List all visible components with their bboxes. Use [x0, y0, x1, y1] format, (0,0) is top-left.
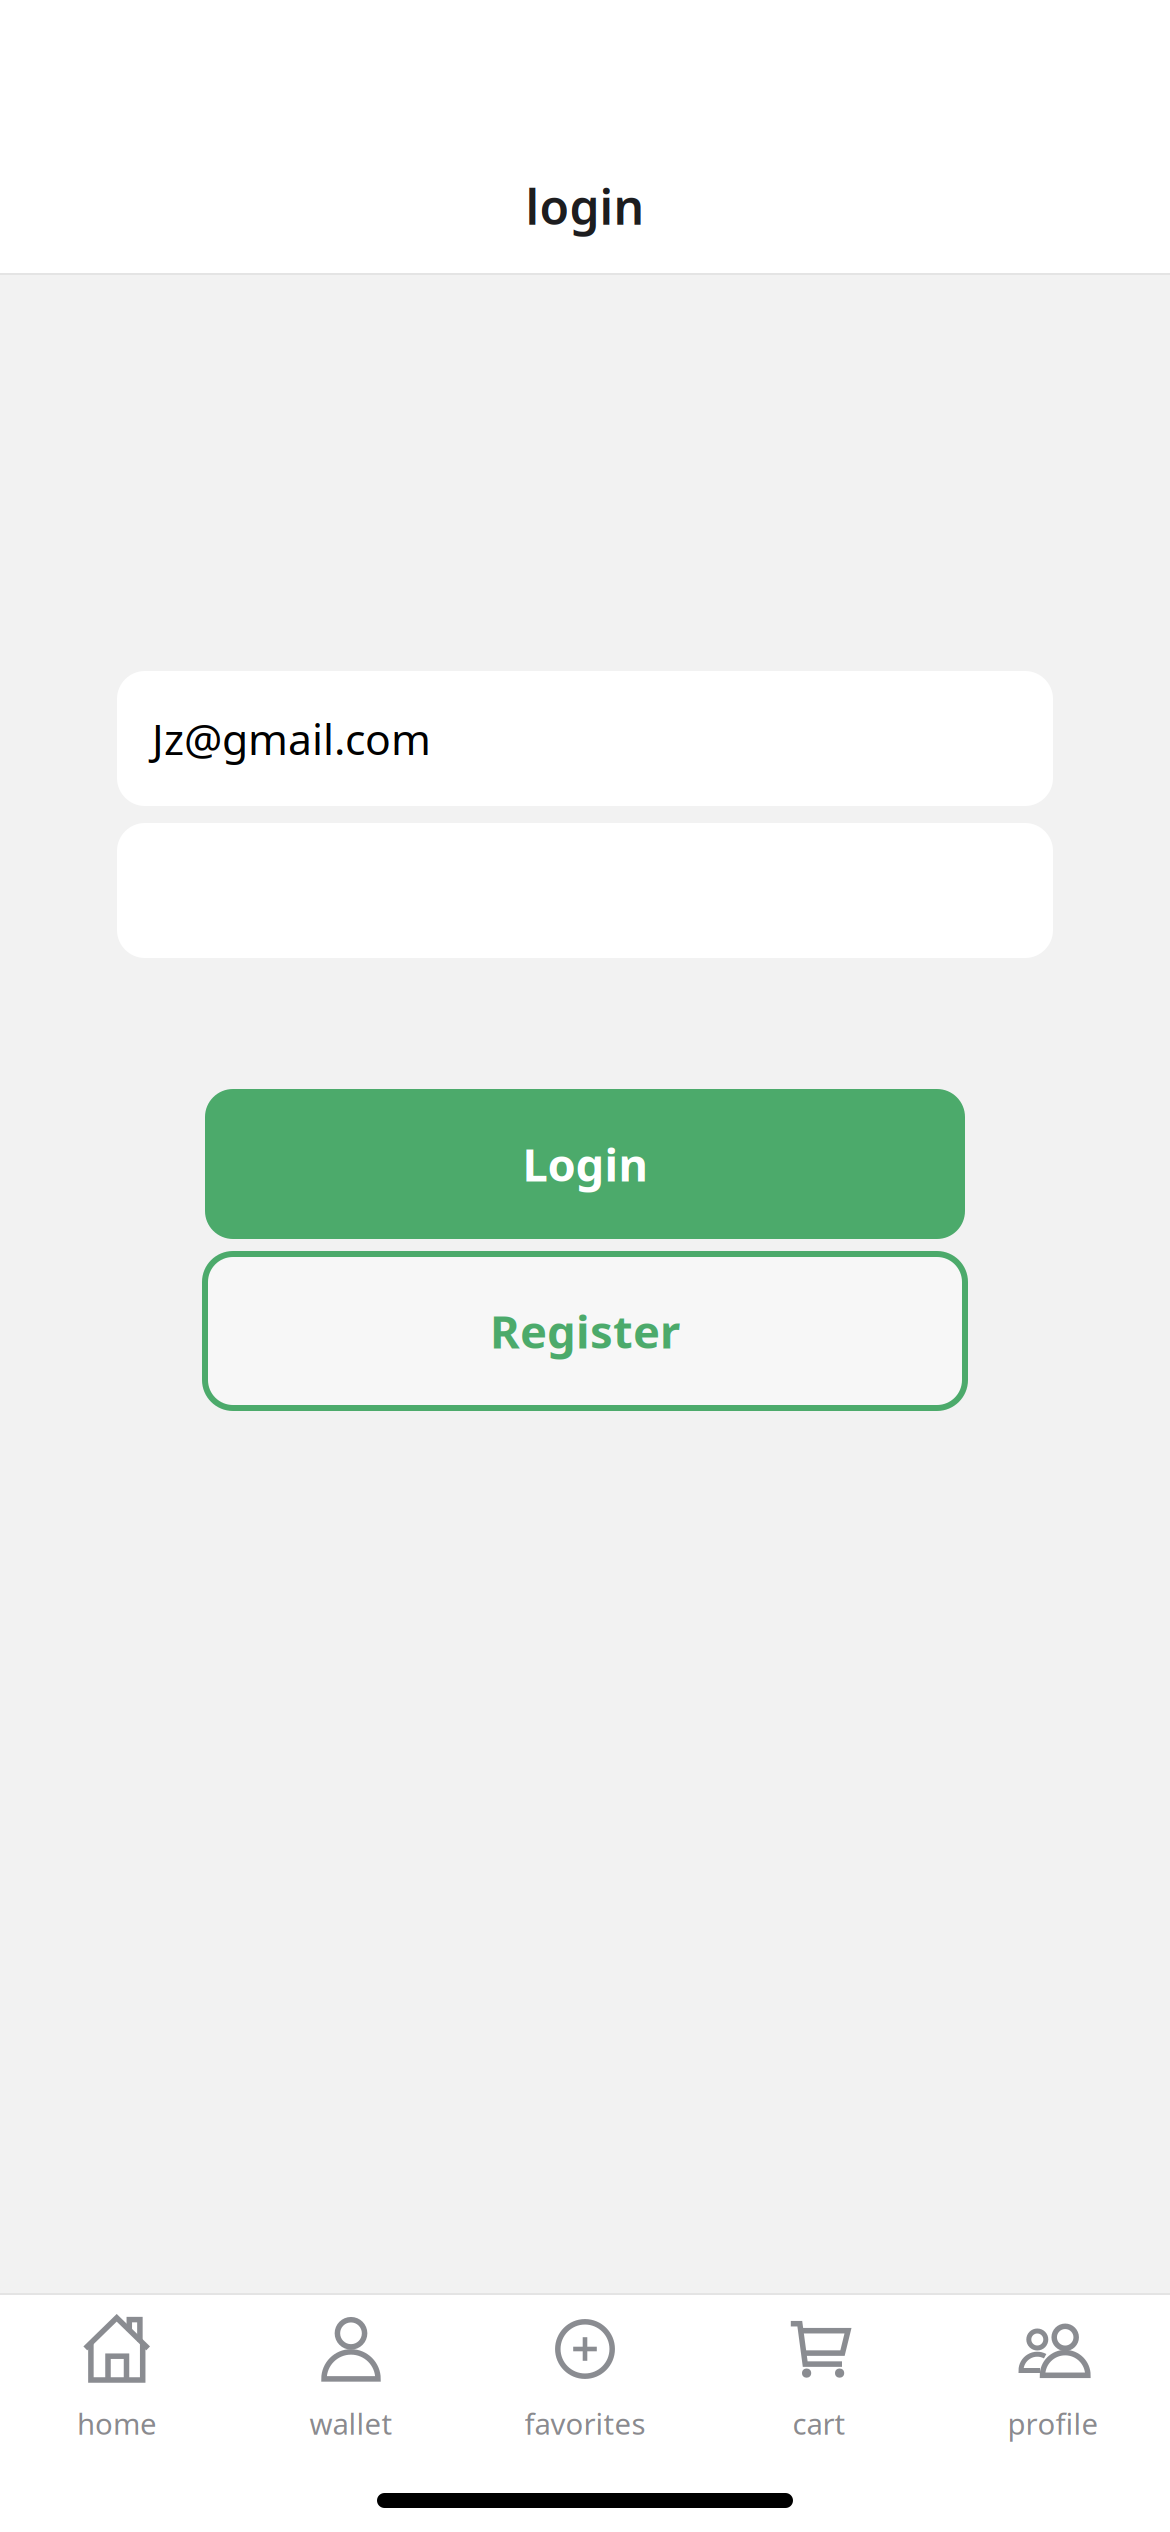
staticText: Jz@gmail.com — [152, 710, 431, 767]
button[interactable]: profile — [936, 2295, 1170, 2443]
button[interactable]: Login — [205, 1089, 965, 1239]
staticText: Register — [490, 1301, 680, 1361]
staticText: profile — [1007, 2404, 1098, 2443]
button[interactable]: favorites — [468, 2295, 702, 2443]
button[interactable]: wallet — [234, 2295, 468, 2443]
staticText: favorites — [524, 2404, 645, 2443]
button[interactable]: home — [0, 2295, 234, 2443]
staticText: wallet — [309, 2404, 392, 2443]
staticText: Login — [522, 1134, 647, 1194]
button[interactable]: cart — [702, 2295, 936, 2443]
staticText: cart — [792, 2404, 845, 2443]
staticText: home — [77, 2404, 157, 2443]
button[interactable]: Jz@gmail.com — [117, 671, 1053, 806]
button[interactable]: Register — [205, 1254, 965, 1408]
staticText: login — [525, 174, 644, 238]
